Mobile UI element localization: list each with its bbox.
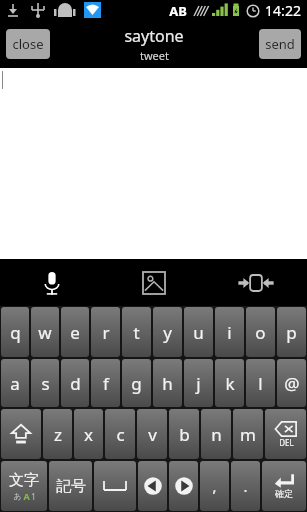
button[interactable]: y xyxy=(153,307,182,357)
button[interactable] xyxy=(1,409,41,459)
button[interactable]: x xyxy=(74,409,103,459)
button[interactable]: c xyxy=(105,409,135,459)
button[interactable]: r xyxy=(91,307,120,357)
button[interactable]: Insert image xyxy=(103,259,205,306)
button[interactable]: p xyxy=(277,307,306,357)
staticText: o xyxy=(255,321,266,344)
staticText: b xyxy=(179,423,190,446)
button[interactable]: w xyxy=(31,307,59,357)
button[interactable]: 記号 xyxy=(49,461,92,511)
button[interactable]: DEL xyxy=(265,409,306,459)
button[interactable]: e xyxy=(61,307,89,357)
staticText: あ xyxy=(13,491,22,501)
staticText: m xyxy=(240,423,256,446)
button[interactable]: . xyxy=(231,461,260,511)
staticText: i xyxy=(227,321,232,344)
staticText: k xyxy=(225,372,235,395)
staticText: close xyxy=(12,35,44,53)
staticText: 確定 xyxy=(275,488,293,499)
button[interactable] xyxy=(94,461,136,511)
button[interactable]: m xyxy=(233,409,263,459)
button[interactable]: d xyxy=(61,359,89,407)
staticText: . xyxy=(243,476,248,496)
staticText: u xyxy=(193,321,204,344)
button[interactable]: close xyxy=(6,29,50,59)
staticText: A xyxy=(23,490,30,502)
button[interactable]: k xyxy=(215,359,244,407)
staticText: j xyxy=(196,372,201,395)
button[interactable]: b xyxy=(169,409,199,459)
staticText: tweet xyxy=(140,48,169,63)
button[interactable]: q xyxy=(1,307,29,357)
button[interactable]: o xyxy=(246,307,275,357)
staticText: g xyxy=(131,372,142,395)
button[interactable] xyxy=(169,461,198,511)
staticText: q xyxy=(10,321,21,344)
button[interactable]: a xyxy=(1,359,29,407)
staticText: d xyxy=(70,372,81,395)
button[interactable]: t xyxy=(122,307,151,357)
button[interactable]: @ xyxy=(277,359,306,407)
staticText: n xyxy=(211,423,222,446)
button[interactable]: u xyxy=(184,307,213,357)
staticText: t xyxy=(133,321,140,344)
button[interactable]: g xyxy=(122,359,151,407)
staticText: r xyxy=(102,321,110,344)
button[interactable] xyxy=(138,461,167,511)
staticText: saytone xyxy=(124,25,184,47)
button[interactable]: 確定 xyxy=(262,461,306,511)
staticText: 文字 xyxy=(9,471,39,490)
staticText: 記号 xyxy=(56,477,86,496)
staticText: v xyxy=(148,423,157,446)
button[interactable]: l xyxy=(246,359,275,407)
button[interactable]: n xyxy=(201,409,231,459)
staticText: p xyxy=(286,321,297,344)
staticText: x xyxy=(84,423,93,446)
staticText: DEL xyxy=(279,437,294,448)
button[interactable]: f xyxy=(91,359,120,407)
staticText: AB xyxy=(169,2,187,20)
staticText: c xyxy=(116,423,125,446)
staticText: @ xyxy=(284,372,300,395)
button[interactable]: s xyxy=(31,359,59,407)
button[interactable]: v xyxy=(137,409,167,459)
button[interactable]: Resize keyboard xyxy=(205,259,307,306)
button[interactable]: 文字 xyxy=(1,461,47,511)
staticText: l xyxy=(258,372,263,395)
button[interactable]: z xyxy=(43,409,72,459)
button[interactable]: Voice input xyxy=(0,259,103,306)
staticText: send xyxy=(265,35,295,53)
staticText: a xyxy=(10,372,20,395)
button[interactable]: j xyxy=(184,359,213,407)
button[interactable]: , xyxy=(200,461,229,511)
button[interactable]: h xyxy=(153,359,182,407)
staticText: s xyxy=(41,372,50,395)
staticText: 14:22 xyxy=(265,1,301,20)
staticText: e xyxy=(70,321,80,344)
staticText: h xyxy=(162,372,173,395)
staticText: z xyxy=(54,423,62,446)
staticText: f xyxy=(103,372,109,395)
button[interactable]: i xyxy=(215,307,244,357)
staticText: w xyxy=(38,321,52,344)
button[interactable]: send xyxy=(259,29,301,59)
staticText: , xyxy=(212,476,217,496)
staticText: y xyxy=(163,321,172,344)
staticText: 1 xyxy=(31,491,36,502)
